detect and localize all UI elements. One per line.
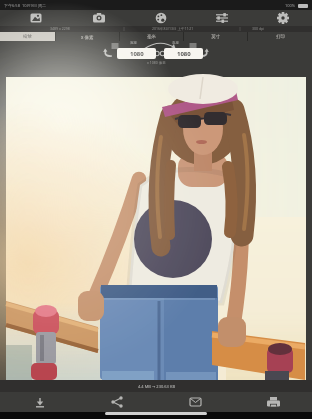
staticText: 1080	[177, 50, 191, 58]
button[interactable]: 缩放	[0, 32, 55, 41]
staticText: x 像素	[81, 34, 94, 40]
staticText: 下午6:58 10月9日 周二	[4, 3, 46, 8]
staticText: 4.4 MB → 230.63 KB	[138, 384, 175, 389]
button[interactable]: 1080	[117, 48, 156, 59]
staticText: 300 dpi	[252, 26, 265, 31]
button[interactable]	[91, 10, 107, 26]
staticText: 100%	[285, 3, 296, 8]
button[interactable]	[153, 10, 169, 26]
button[interactable]	[263, 392, 283, 412]
staticText: 打印	[276, 34, 285, 40]
staticText: 1080	[130, 50, 144, 58]
button[interactable]: x 像素	[56, 32, 119, 41]
button[interactable]	[214, 10, 230, 26]
staticText: 英寸	[211, 34, 220, 40]
button[interactable]: 1080	[164, 48, 203, 59]
staticText: 3489 x 2298	[50, 26, 70, 31]
button[interactable]	[275, 10, 291, 26]
button[interactable]	[30, 392, 50, 412]
button[interactable]	[185, 392, 205, 412]
button[interactable]	[28, 10, 44, 26]
button[interactable]: 英寸	[184, 32, 247, 41]
staticText: 缩放	[23, 34, 32, 40]
staticText: x 1080 像素	[147, 60, 166, 65]
staticText: 高度	[172, 41, 179, 45]
staticText: 毫米	[147, 34, 156, 40]
button[interactable]	[107, 392, 127, 412]
button[interactable]: 打印	[248, 32, 312, 41]
button[interactable]: 毫米	[120, 32, 183, 41]
staticText: 2016年8月13日 上午11:21	[152, 26, 194, 31]
staticText: 宽度	[130, 41, 137, 45]
